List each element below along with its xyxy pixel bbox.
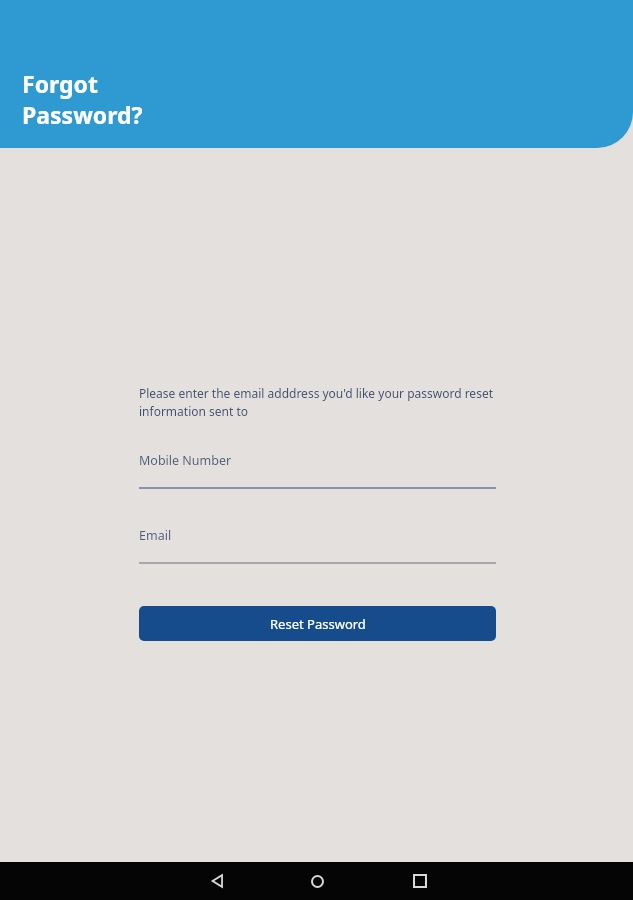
staticText: Reset Password: [270, 615, 366, 633]
button[interactable]: Reset Password: [139, 606, 496, 641]
button[interactable]: Recent apps: [406, 867, 434, 895]
button[interactable]: Back: [203, 867, 231, 895]
staticText: Email: [139, 527, 172, 544]
staticText: Please enter the email adddress you'd li…: [139, 385, 496, 420]
button[interactable]: Home: [303, 867, 331, 895]
staticText: Forgot: [22, 68, 98, 99]
button[interactable]: Mobile Number: [139, 452, 496, 489]
staticText: Password?: [22, 99, 143, 130]
staticText: Mobile Number: [139, 452, 232, 469]
button[interactable]: Email: [139, 527, 496, 564]
